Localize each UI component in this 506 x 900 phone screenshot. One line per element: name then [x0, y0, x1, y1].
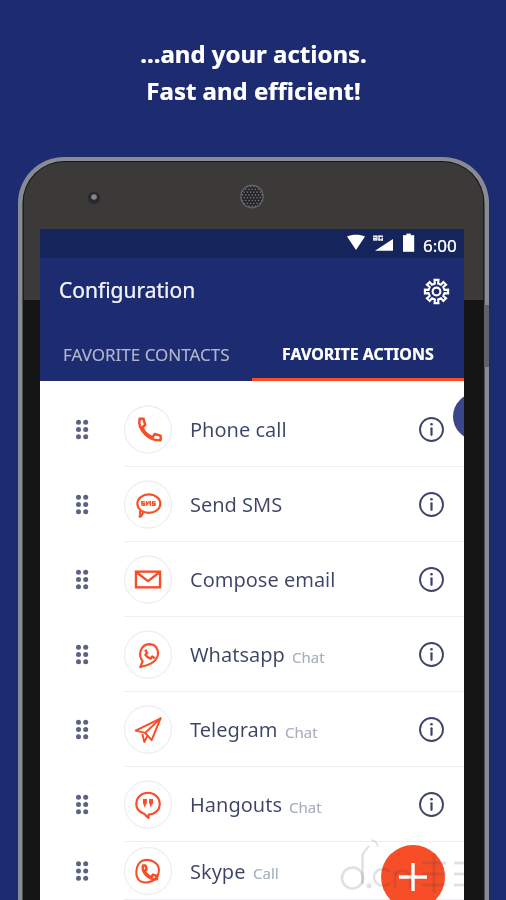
staticText: FAVORITE ACTIONS [282, 343, 434, 365]
button[interactable]: Hangouts [40, 767, 464, 842]
staticText: ...and your actions. [140, 37, 367, 70]
staticText: Phone call [190, 416, 287, 443]
staticText: Whatsapp [190, 641, 285, 668]
button[interactable]: Settings [416, 271, 456, 311]
button[interactable]: Phone call [40, 392, 464, 467]
staticText: Call [253, 863, 279, 883]
button[interactable]: Whatsapp [40, 617, 464, 692]
button[interactable]: Skype [40, 842, 464, 900]
staticText: 6:00 [423, 234, 457, 257]
button[interactable]: FAVORITE ACTIONS [252, 330, 464, 378]
staticText: Chat [289, 797, 322, 817]
button[interactable]: Add action [381, 845, 445, 900]
staticText: Chat [292, 647, 325, 667]
staticText: Hangouts [190, 791, 282, 818]
staticText: FAVORITE CONTACTS [63, 343, 230, 366]
button[interactable]: FAVORITE CONTACTS [40, 330, 252, 378]
staticText: Telegram [190, 716, 278, 743]
staticText: Send SMS [190, 491, 283, 518]
button[interactable]: Send SMS [40, 467, 464, 542]
staticText: Configuration [59, 276, 196, 305]
button[interactable]: Telegram [40, 692, 464, 767]
button[interactable]: Compose email [40, 542, 464, 617]
staticText: Fast and efficient! [146, 74, 361, 107]
staticText: Compose email [190, 566, 336, 593]
staticText: Chat [285, 722, 318, 742]
staticText: Skype [190, 858, 246, 885]
